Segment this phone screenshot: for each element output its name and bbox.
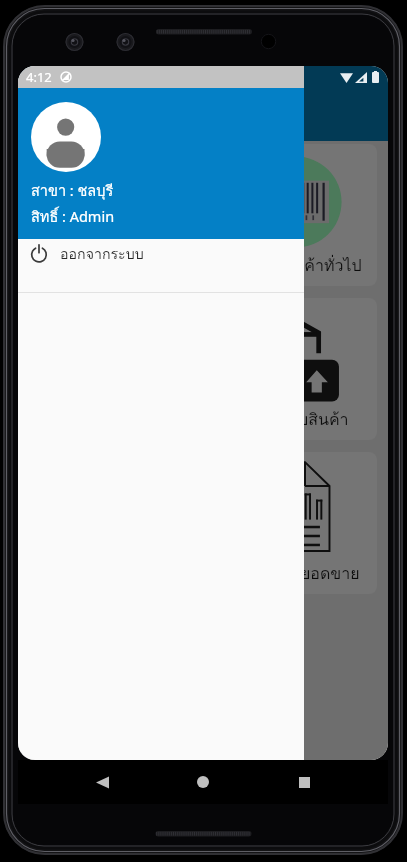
staticText: รับสินค้า [289,407,349,432]
button[interactable]: ขายสินค้าทั่วไป [223,144,377,286]
button[interactable]: Back [85,765,119,799]
button[interactable]: สรุปยอดขาย [223,452,377,594]
button[interactable]: Recent apps [287,765,321,799]
staticText: สิทธิ์ : Admin [31,205,115,228]
button[interactable]: ขายสินค้าทั่วไป [29,144,183,286]
button[interactable]: ออกจากระบบ [18,239,304,292]
staticText: ขายสินค้าทั่วไป [60,253,168,278]
staticText: สรุปยอดขาย [272,561,360,586]
staticText: สาขา : ชลบุรี [31,179,114,202]
staticText: 4:12 [26,68,52,86]
button[interactable]: Home [186,765,220,799]
staticText: ออกจากระบบ [60,243,144,266]
staticText: ขายสินค้าทั่วไป [254,253,362,278]
button[interactable]: รับสินค้า [223,298,377,440]
